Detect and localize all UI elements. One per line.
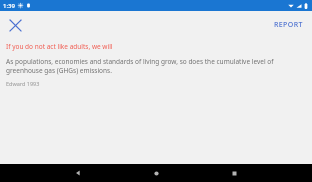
button[interactable]: Home: [130, 164, 182, 182]
button[interactable]: Close: [5, 15, 25, 35]
button[interactable]: Back: [26, 164, 130, 182]
staticText: 1:39: [3, 2, 15, 10]
staticText: Edward 1993: [6, 80, 40, 87]
staticText: REPORT: [274, 20, 303, 30]
staticText: If you do not act like adults, we will: [6, 42, 113, 51]
staticText: As populations, economies and standards …: [6, 57, 306, 75]
button[interactable]: REPORT: [269, 16, 308, 34]
button[interactable]: Recent apps: [182, 164, 286, 182]
